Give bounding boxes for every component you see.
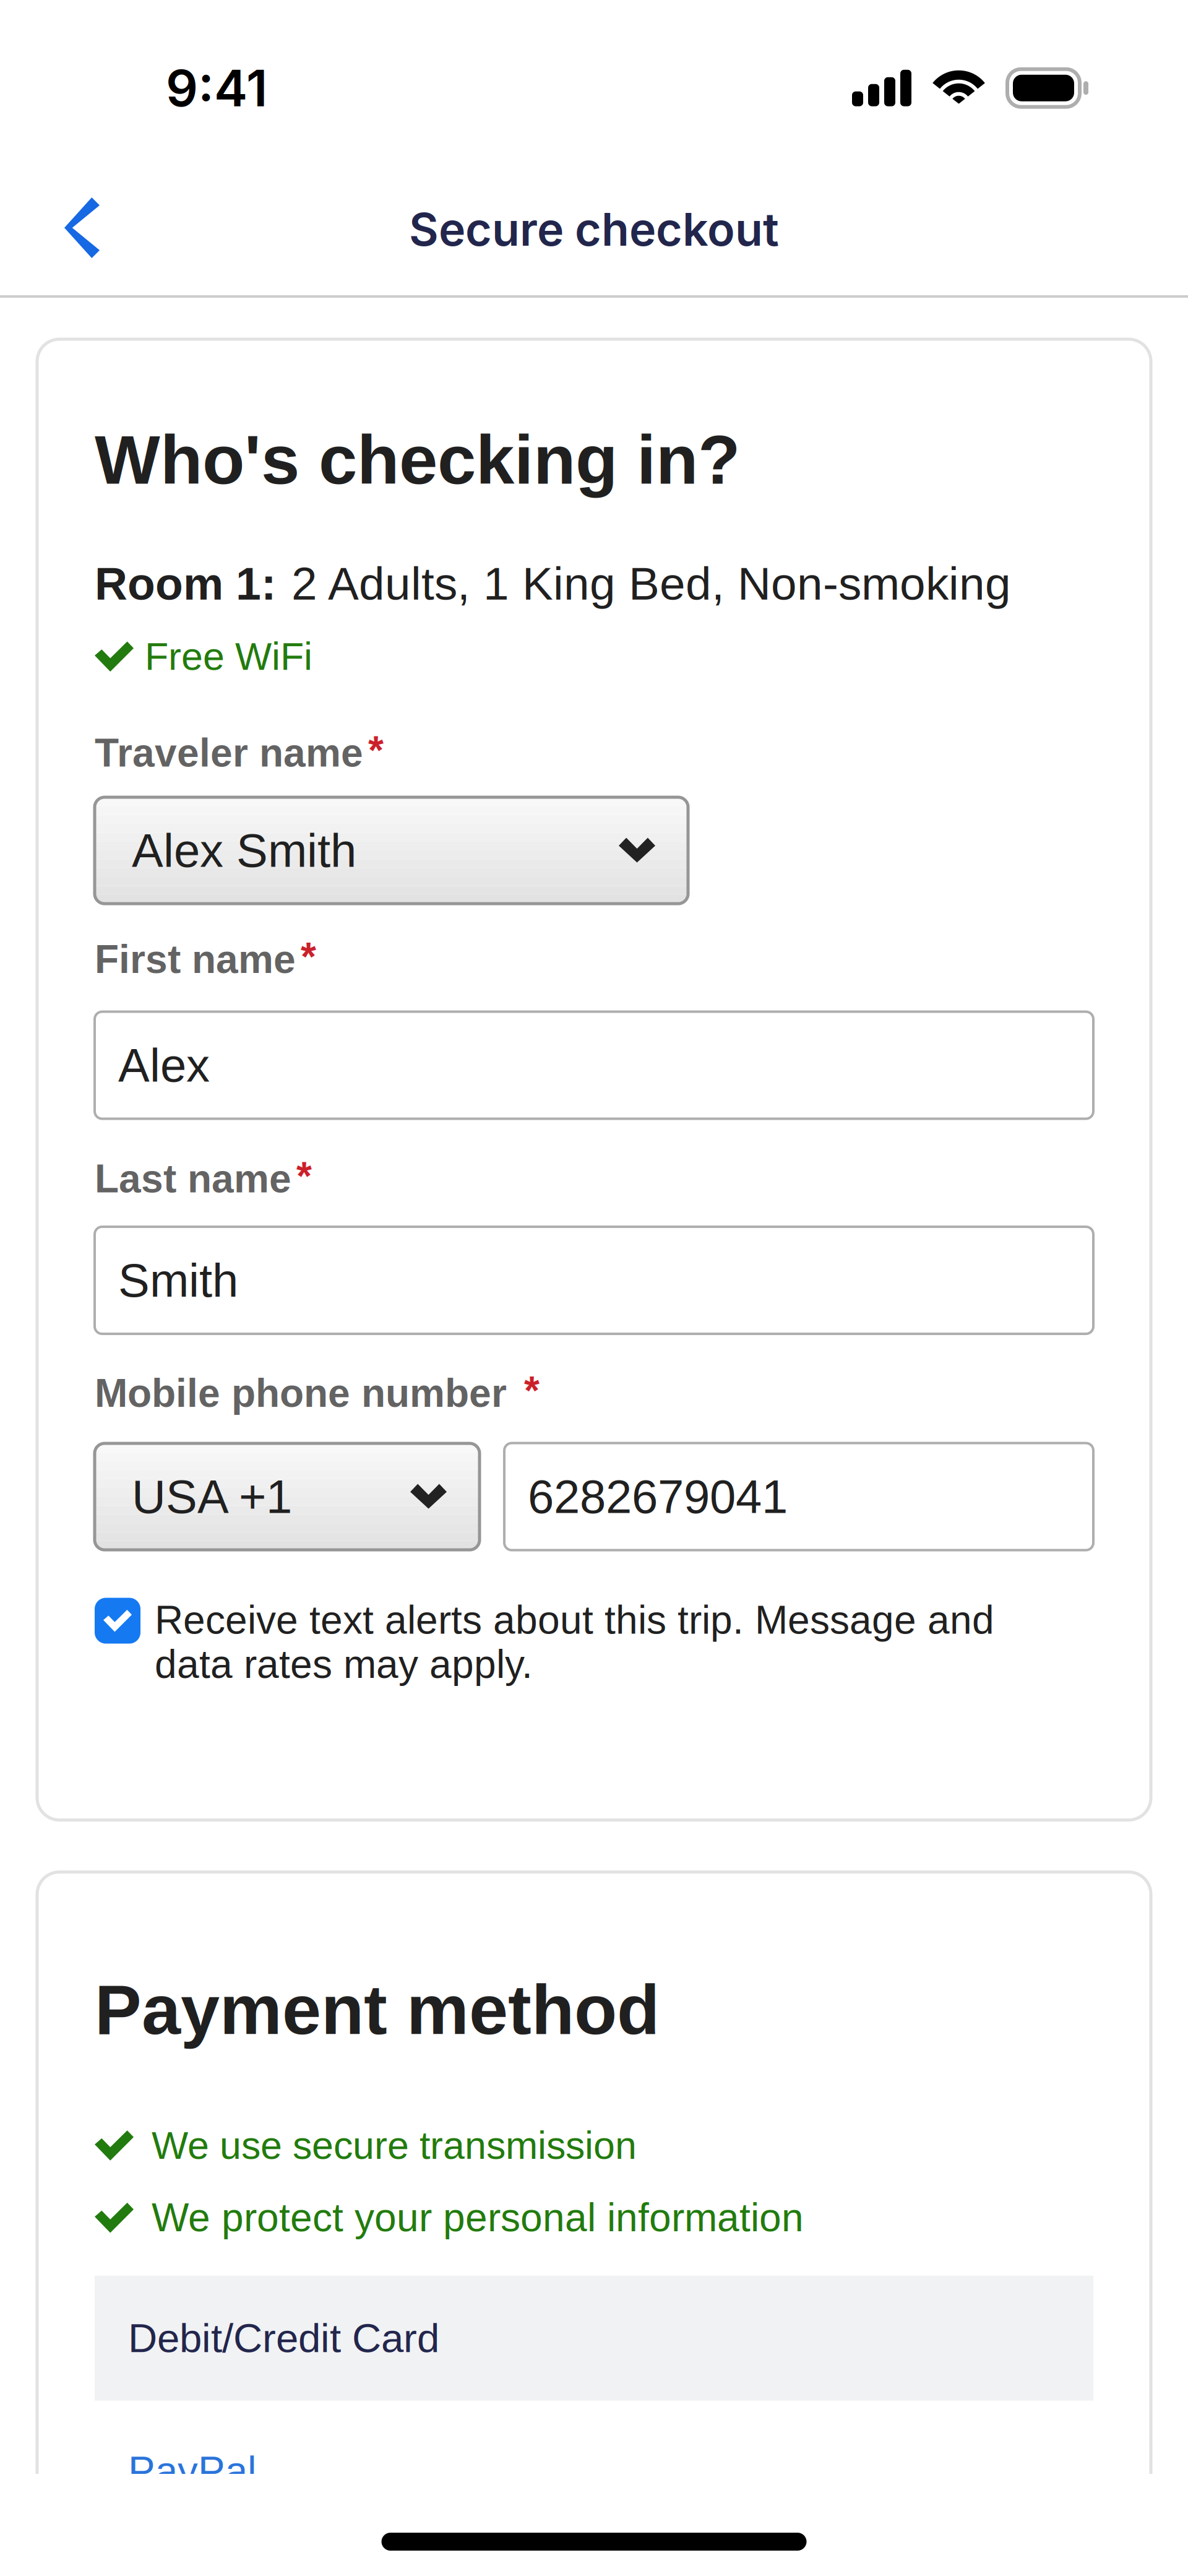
staticText: USA +1 — [132, 1470, 292, 1523]
staticText: 2 Adults, 1 King Bed, Non-smoking — [291, 558, 1011, 609]
staticText: Room 1: — [95, 558, 276, 609]
staticText: Traveler name — [95, 731, 363, 775]
staticText: Receive text alerts about this trip. Mes… — [155, 1598, 994, 1686]
button[interactable]: PayPal — [95, 2433, 1093, 2508]
staticText: Who's checking in? — [95, 421, 740, 498]
button[interactable]: USA +1 — [95, 1443, 480, 1550]
staticText: Free WiFi — [145, 635, 312, 678]
staticText: Mobile phone number — [95, 1371, 507, 1415]
staticText: First name — [95, 937, 296, 981]
staticText: Last name — [95, 1157, 291, 1201]
button[interactable]: Back — [0, 142, 147, 285]
staticText: Smith — [118, 1254, 238, 1307]
staticText: Alex — [118, 1039, 210, 1091]
button[interactable]: Receive text alerts about this trip. Mes… — [95, 1598, 1093, 1686]
staticText: 9:41 — [166, 58, 267, 118]
staticText: * — [368, 728, 384, 772]
staticText: Alex Smith — [132, 824, 356, 877]
staticText: Secure checkout — [409, 202, 779, 257]
staticText: We protect your personal information — [152, 2195, 804, 2240]
staticText: PayPal — [128, 2448, 257, 2493]
button[interactable]: Debit/Credit Card — [95, 2276, 1093, 2401]
staticText: * — [296, 1154, 312, 1198]
button[interactable]: Alex Smith — [95, 797, 688, 904]
staticText: 6282679041 — [528, 1470, 788, 1523]
staticText: * — [524, 1369, 540, 1413]
staticText: Debit/Credit Card — [128, 2316, 439, 2361]
staticText: * — [301, 935, 316, 979]
staticText: We use secure transmission — [152, 2124, 637, 2167]
staticText: Payment method — [95, 1970, 660, 2049]
